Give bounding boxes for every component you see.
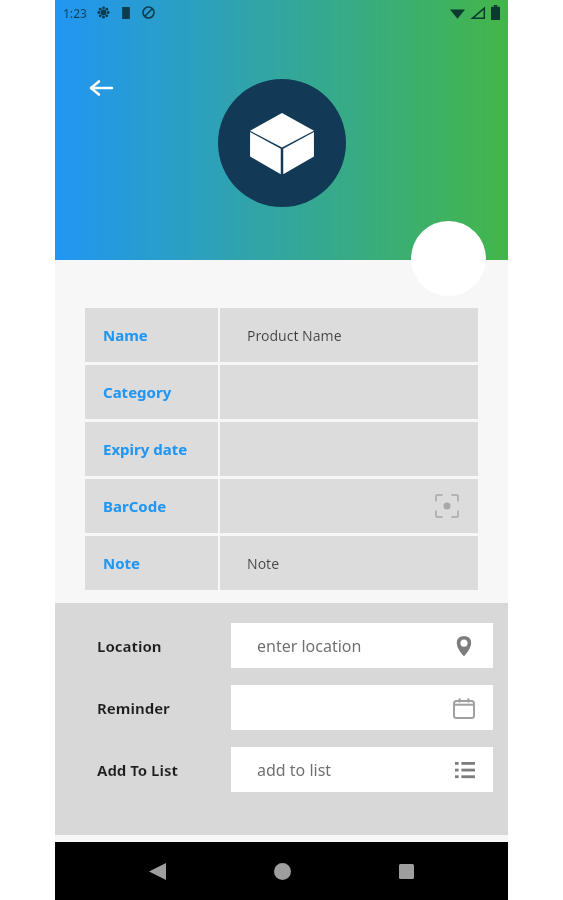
- staticText: Note: [103, 553, 141, 573]
- staticText: add to list: [257, 759, 332, 781]
- staticText: Category: [103, 382, 172, 402]
- staticText: Expiry date: [103, 439, 188, 459]
- staticText: Reminder: [97, 698, 170, 718]
- staticText: Product Name: [247, 326, 342, 345]
- staticText: Note: [247, 554, 280, 573]
- button[interactable]: Location: [55, 623, 508, 668]
- staticText: Name: [103, 325, 148, 345]
- staticText: enter location: [257, 635, 362, 657]
- button[interactable]: Add To List: [55, 747, 508, 792]
- button[interactable]: Recents: [383, 848, 429, 894]
- button[interactable]: Home: [259, 848, 305, 894]
- button[interactable]: Category: [85, 365, 478, 419]
- button[interactable]: Name: [85, 308, 478, 362]
- button[interactable]: Back: [134, 848, 180, 894]
- button[interactable]: Expiry date: [85, 422, 478, 476]
- button[interactable]: Note: [85, 536, 478, 590]
- button[interactable]: Back: [77, 64, 125, 112]
- button[interactable]: Scan barcode: [432, 491, 462, 521]
- button[interactable]: BarCode: [85, 479, 478, 533]
- staticText: Location: [97, 636, 162, 656]
- button[interactable]: Add photo: [411, 221, 486, 296]
- staticText: BarCode: [103, 496, 167, 516]
- staticText: 1:23: [63, 5, 87, 21]
- button[interactable]: Reminder: [55, 685, 508, 730]
- staticText: Add To List: [97, 760, 179, 780]
